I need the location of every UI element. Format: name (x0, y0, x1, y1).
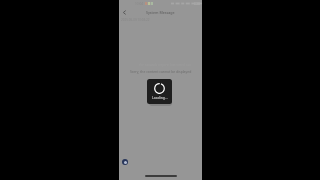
staticText: Sorry, the content cannot be displayed (130, 69, 192, 74)
staticText: Loading... (152, 95, 168, 100)
staticText: System Message (146, 10, 175, 15)
button[interactable]: Assistant (122, 159, 128, 165)
button[interactable]: Back (120, 8, 129, 17)
